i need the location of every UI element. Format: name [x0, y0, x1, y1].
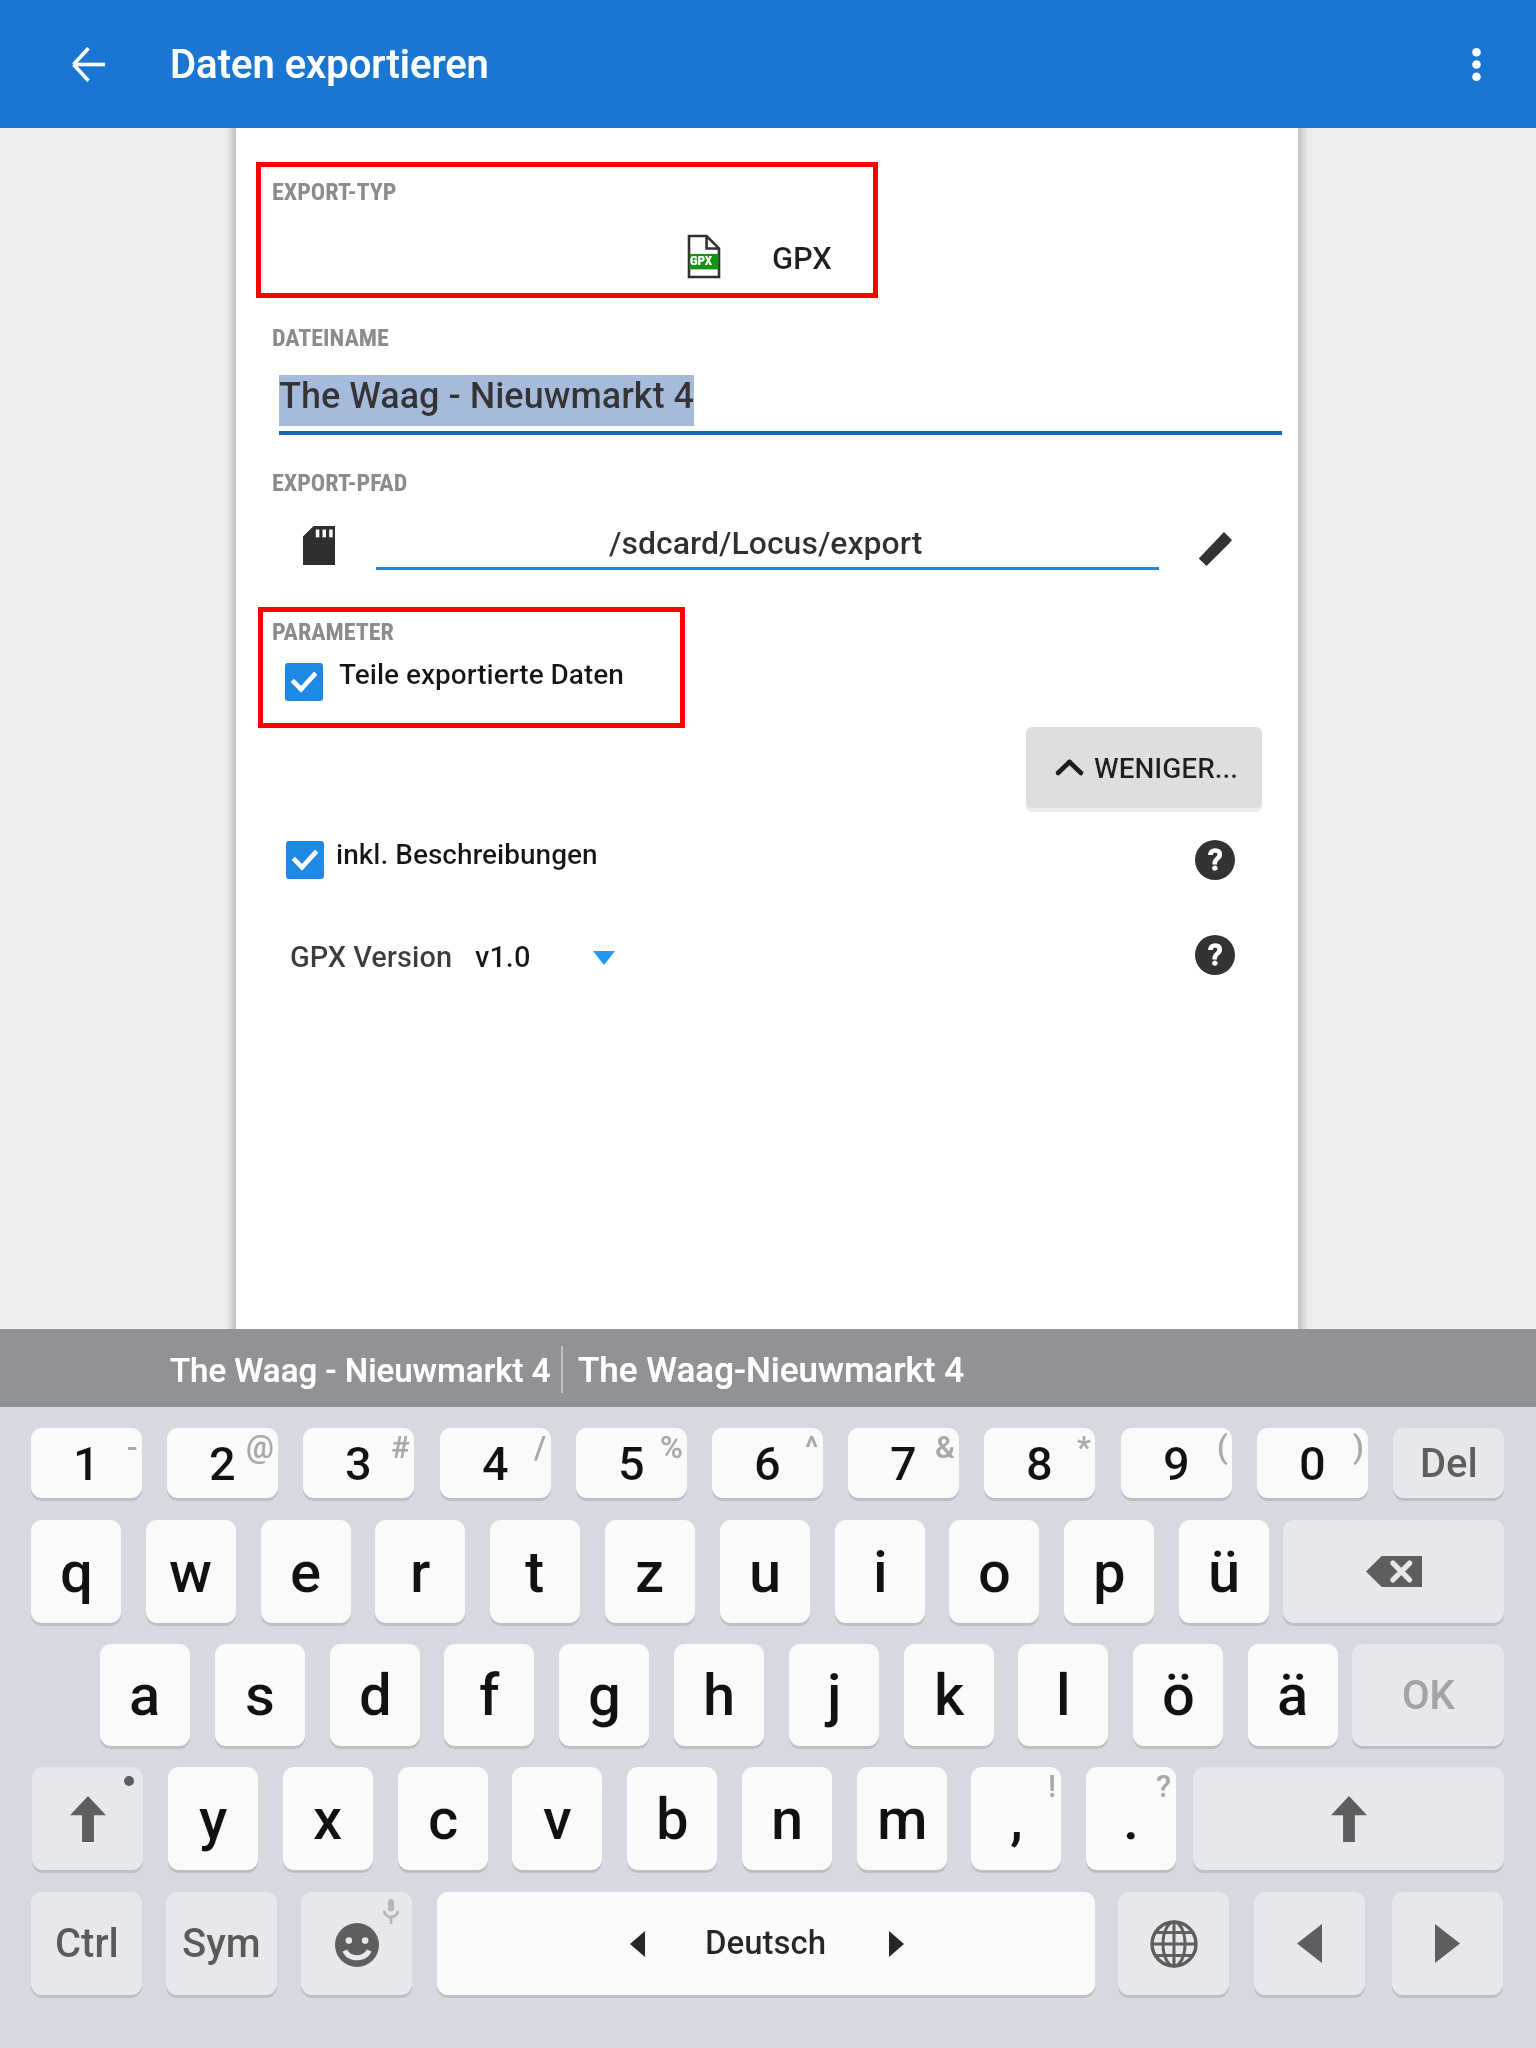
- staticText: ,: [1010, 1785, 1023, 1853]
- button[interactable]: x: [283, 1767, 373, 1870]
- staticText: Deutsch: [705, 1923, 827, 1962]
- button[interactable]: globe: [1118, 1892, 1229, 1995]
- staticText: o: [978, 1538, 1011, 1606]
- button[interactable]: s: [215, 1644, 305, 1746]
- button[interactable]: 9: [1121, 1428, 1232, 1498]
- button[interactable]: ä: [1248, 1644, 1338, 1746]
- button[interactable]: Help: [1187, 927, 1243, 983]
- button[interactable]: h: [674, 1644, 764, 1746]
- button[interactable]: Teile exportierte Daten: [339, 658, 624, 691]
- button[interactable]: ,: [971, 1767, 1061, 1870]
- button[interactable]: OK: [1352, 1644, 1504, 1746]
- button[interactable]: Edit export path: [1180, 511, 1252, 583]
- staticText: 3: [345, 1436, 372, 1491]
- staticText: PARAMETER: [272, 618, 394, 646]
- button[interactable]: Checkbox, checked: [285, 663, 323, 701]
- staticText: Daten exportieren: [170, 41, 489, 88]
- button[interactable]: l: [1018, 1644, 1108, 1746]
- staticText: Sym: [182, 1920, 261, 1967]
- button[interactable]: Ctrl: [31, 1892, 142, 1995]
- button[interactable]: space: [437, 1892, 1095, 1995]
- button[interactable]: GPX: [266, 220, 866, 292]
- button[interactable]: w: [146, 1520, 236, 1623]
- button[interactable]: 8: [984, 1428, 1095, 1498]
- staticText: z: [635, 1538, 665, 1606]
- button[interactable]: 2: [167, 1428, 278, 1498]
- staticText: t: [525, 1538, 545, 1606]
- button[interactable]: right: [1392, 1892, 1503, 1995]
- button[interactable]: u: [720, 1520, 810, 1623]
- button[interactable]: v: [512, 1767, 602, 1870]
- button[interactable]: The Waag - Nieuwmarkt 4: [160, 1329, 560, 1407]
- button[interactable]: ö: [1133, 1644, 1223, 1746]
- staticText: s: [245, 1661, 275, 1729]
- button[interactable]: m: [857, 1767, 947, 1870]
- button[interactable]: More options: [1428, 16, 1524, 112]
- button[interactable]: i: [835, 1520, 925, 1623]
- staticText: OK: [1402, 1672, 1455, 1719]
- staticText: f: [479, 1661, 500, 1729]
- button[interactable]: o: [949, 1520, 1039, 1623]
- button[interactable]: shift: [1193, 1767, 1504, 1870]
- staticText: j: [827, 1661, 842, 1729]
- staticText: EXPORT-TYP: [272, 178, 397, 206]
- button[interactable]: 6: [712, 1428, 823, 1498]
- button[interactable]: Del: [1393, 1428, 1504, 1498]
- button[interactable]: Checkbox, checked: [286, 841, 324, 879]
- button[interactable]: 1: [31, 1428, 142, 1498]
- button[interactable]: shiftdot: [32, 1767, 143, 1870]
- staticText: x: [313, 1785, 343, 1853]
- button[interactable]: Help: [1187, 832, 1243, 888]
- button[interactable]: j: [789, 1644, 879, 1746]
- button[interactable]: z: [605, 1520, 695, 1623]
- staticText: w: [169, 1538, 213, 1606]
- staticText: (: [1217, 1429, 1228, 1465]
- staticText: 8: [1026, 1436, 1053, 1491]
- button[interactable]: q: [31, 1520, 121, 1623]
- button[interactable]: c: [398, 1767, 488, 1870]
- button[interactable]: b: [627, 1767, 717, 1870]
- button[interactable]: 4: [440, 1428, 551, 1498]
- button[interactable]: p: [1064, 1520, 1154, 1623]
- staticText: .: [1123, 1785, 1140, 1853]
- button[interactable]: n: [742, 1767, 832, 1870]
- button[interactable]: Select GPX version: [582, 936, 626, 980]
- button[interactable]: emoji: [301, 1892, 412, 1995]
- staticText: EXPORT-PFAD: [272, 469, 408, 497]
- button[interactable]: t: [490, 1520, 580, 1623]
- button[interactable]: e: [261, 1520, 351, 1623]
- button[interactable]: Back: [40, 16, 136, 112]
- staticText: l: [1056, 1661, 1071, 1729]
- button[interactable]: k: [904, 1644, 994, 1746]
- button[interactable]: a: [100, 1644, 190, 1746]
- button[interactable]: 7: [848, 1428, 959, 1498]
- button[interactable]: Sym: [166, 1892, 277, 1995]
- button[interactable]: r: [375, 1520, 465, 1623]
- staticText: n: [771, 1785, 804, 1853]
- button[interactable]: .: [1086, 1767, 1176, 1870]
- staticText: -: [127, 1429, 138, 1465]
- button[interactable]: 0: [1257, 1428, 1368, 1498]
- staticText: k: [934, 1661, 965, 1729]
- staticText: 4: [482, 1436, 509, 1491]
- button[interactable]: ü: [1179, 1520, 1269, 1623]
- button[interactable]: WENIGER...: [1026, 727, 1262, 808]
- button[interactable]: 3: [303, 1428, 414, 1498]
- button[interactable]: File name: [279, 368, 1282, 435]
- button[interactable]: left: [1254, 1892, 1365, 1995]
- button[interactable]: inkl. Beschreibungen: [336, 838, 598, 871]
- button[interactable]: g: [559, 1644, 649, 1746]
- button[interactable]: f: [444, 1644, 534, 1746]
- button[interactable]: The Waag-Nieuwmarkt 4: [570, 1329, 970, 1407]
- staticText: ?: [1156, 1768, 1172, 1804]
- staticText: v: [543, 1785, 572, 1853]
- staticText: @: [246, 1429, 274, 1465]
- button[interactable]: 5: [576, 1428, 687, 1498]
- button[interactable]: d: [330, 1644, 420, 1746]
- staticText: ?: [1208, 842, 1223, 877]
- staticText: The Waag - Nieuwmarkt 4: [170, 1351, 551, 1390]
- staticText: GPX: [690, 253, 712, 268]
- button[interactable]: y: [168, 1767, 258, 1870]
- staticText: *: [1077, 1429, 1091, 1465]
- button[interactable]: backspace: [1283, 1520, 1504, 1623]
